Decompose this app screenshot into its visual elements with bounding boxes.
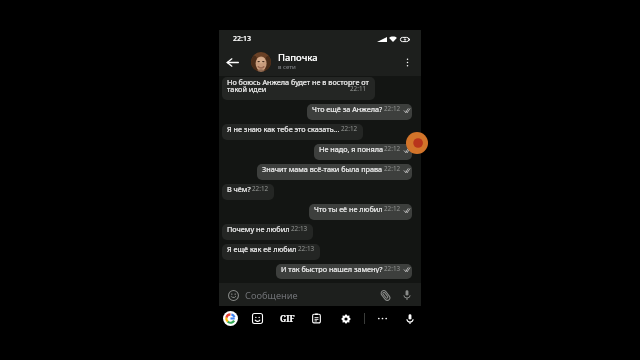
staticText: 22:12: [252, 184, 269, 193]
button[interactable]: Voice message: [397, 285, 417, 305]
button[interactable]: Emoji: [223, 285, 243, 305]
button[interactable]: Google: [217, 306, 243, 331]
button[interactable]: Settings: [333, 306, 359, 331]
staticText: В чём?: [227, 184, 251, 194]
staticText: 22:11: [350, 84, 367, 93]
button[interactable]: Back: [219, 49, 246, 76]
button[interactable]: Stickers: [244, 306, 270, 331]
staticText: Не надо, я поняла: [319, 144, 383, 154]
button[interactable]: More: [369, 306, 395, 331]
staticText: в сети: [278, 62, 296, 70]
button[interactable]: Voice input: [397, 306, 423, 331]
staticText: 22:13: [298, 244, 315, 253]
staticText: 22:12: [341, 124, 358, 133]
staticText: 22:12: [384, 204, 401, 213]
button[interactable]: Я ещё как её любил: [222, 244, 320, 260]
button[interactable]: GIF: [274, 306, 300, 331]
staticText: Почему не любил: [227, 224, 290, 234]
staticText: GIF: [280, 313, 295, 324]
staticText: И так быстро нашел замену?: [281, 264, 383, 273]
staticText: Что ты её не любил: [314, 204, 383, 214]
button[interactable]: More options: [394, 49, 421, 76]
staticText: Сообщение: [245, 289, 298, 302]
button[interactable]: Что ещё за Анжела?: [307, 104, 412, 120]
staticText: 22:12: [384, 144, 401, 153]
staticText: 22:13: [384, 264, 401, 272]
button[interactable]: Attach file: [375, 285, 395, 305]
staticText: Папочка: [278, 51, 318, 64]
staticText: Но боюсь Анжела будет не в восторге от т…: [227, 77, 369, 94]
staticText: 22:12: [384, 164, 401, 173]
staticText: Значит мама всё-таки была права: [262, 164, 383, 174]
button[interactable]: Значит мама всё-таки была права: [257, 164, 412, 180]
button[interactable]: Что ты её не любил: [309, 204, 412, 220]
staticText: 22:12: [384, 104, 401, 113]
button[interactable]: Почему не любил: [222, 224, 313, 240]
button[interactable]: В чём?: [222, 184, 274, 200]
staticText: Я не знаю как тебе это сказать...: [227, 124, 340, 134]
button[interactable]: Я не знаю как тебе это сказать...: [222, 124, 363, 140]
staticText: Что ещё за Анжела?: [312, 104, 383, 114]
button[interactable]: Но боюсь Анжела будет не в восторге от т…: [222, 77, 375, 100]
staticText: 22:13: [291, 224, 308, 233]
button[interactable]: И так быстро нашел замену?: [276, 264, 412, 279]
button[interactable]: Clipboard: [303, 306, 329, 331]
staticText: 22:13: [233, 34, 251, 44]
staticText: Я ещё как её любил: [227, 244, 297, 254]
button[interactable]: Не надо, я поняла: [314, 144, 412, 160]
